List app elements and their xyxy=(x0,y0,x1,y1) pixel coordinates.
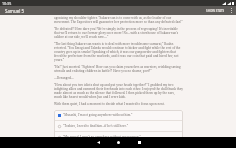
button[interactable]: Back xyxy=(92,137,104,148)
button[interactable]: Recents xyxy=(133,137,145,148)
button[interactable]: SHOW STATS xyxy=(204,8,227,14)
button[interactable]: More options xyxy=(227,6,236,15)
staticText: —Deranged— xyxy=(54,76,183,80)
staticText: 10:35 xyxy=(2,1,12,6)
staticText: “Toshiro, I need to find him...if he’s s… xyxy=(63,124,129,128)
button[interactable]: Home xyxy=(112,137,124,148)
staticText: “How about you two idiots shut up and pu… xyxy=(54,83,183,99)
staticText: SHOW STATS xyxy=(206,9,225,13)
staticText: “Be defeated?! How dare you! We’re simpl… xyxy=(54,27,183,39)
button[interactable]: “Musashi, I’m not going anywhere without… xyxy=(54,110,183,120)
button[interactable]: “My sword, I won’t go anywhere without m… xyxy=(54,132,183,142)
button[interactable]: “Toshiro, I need to find him...if he’s s… xyxy=(54,121,183,131)
staticText: “My sword, I won’t go anywhere without m… xyxy=(63,135,141,139)
staticText: “Musashi, I’m not going anywhere without… xyxy=(63,113,133,117)
staticText: “The last thing Sakara-sun wants is to d… xyxy=(54,42,183,62)
staticText: agonizing my shoulder tighter. “Sakara-s… xyxy=(54,16,183,24)
staticText: Samuel 5 xyxy=(5,8,24,14)
staticText: “Ha!” Juri snorted. “Fighters! How can y… xyxy=(54,65,183,73)
staticText: With them quiet, I had a moment to decid… xyxy=(54,102,183,106)
